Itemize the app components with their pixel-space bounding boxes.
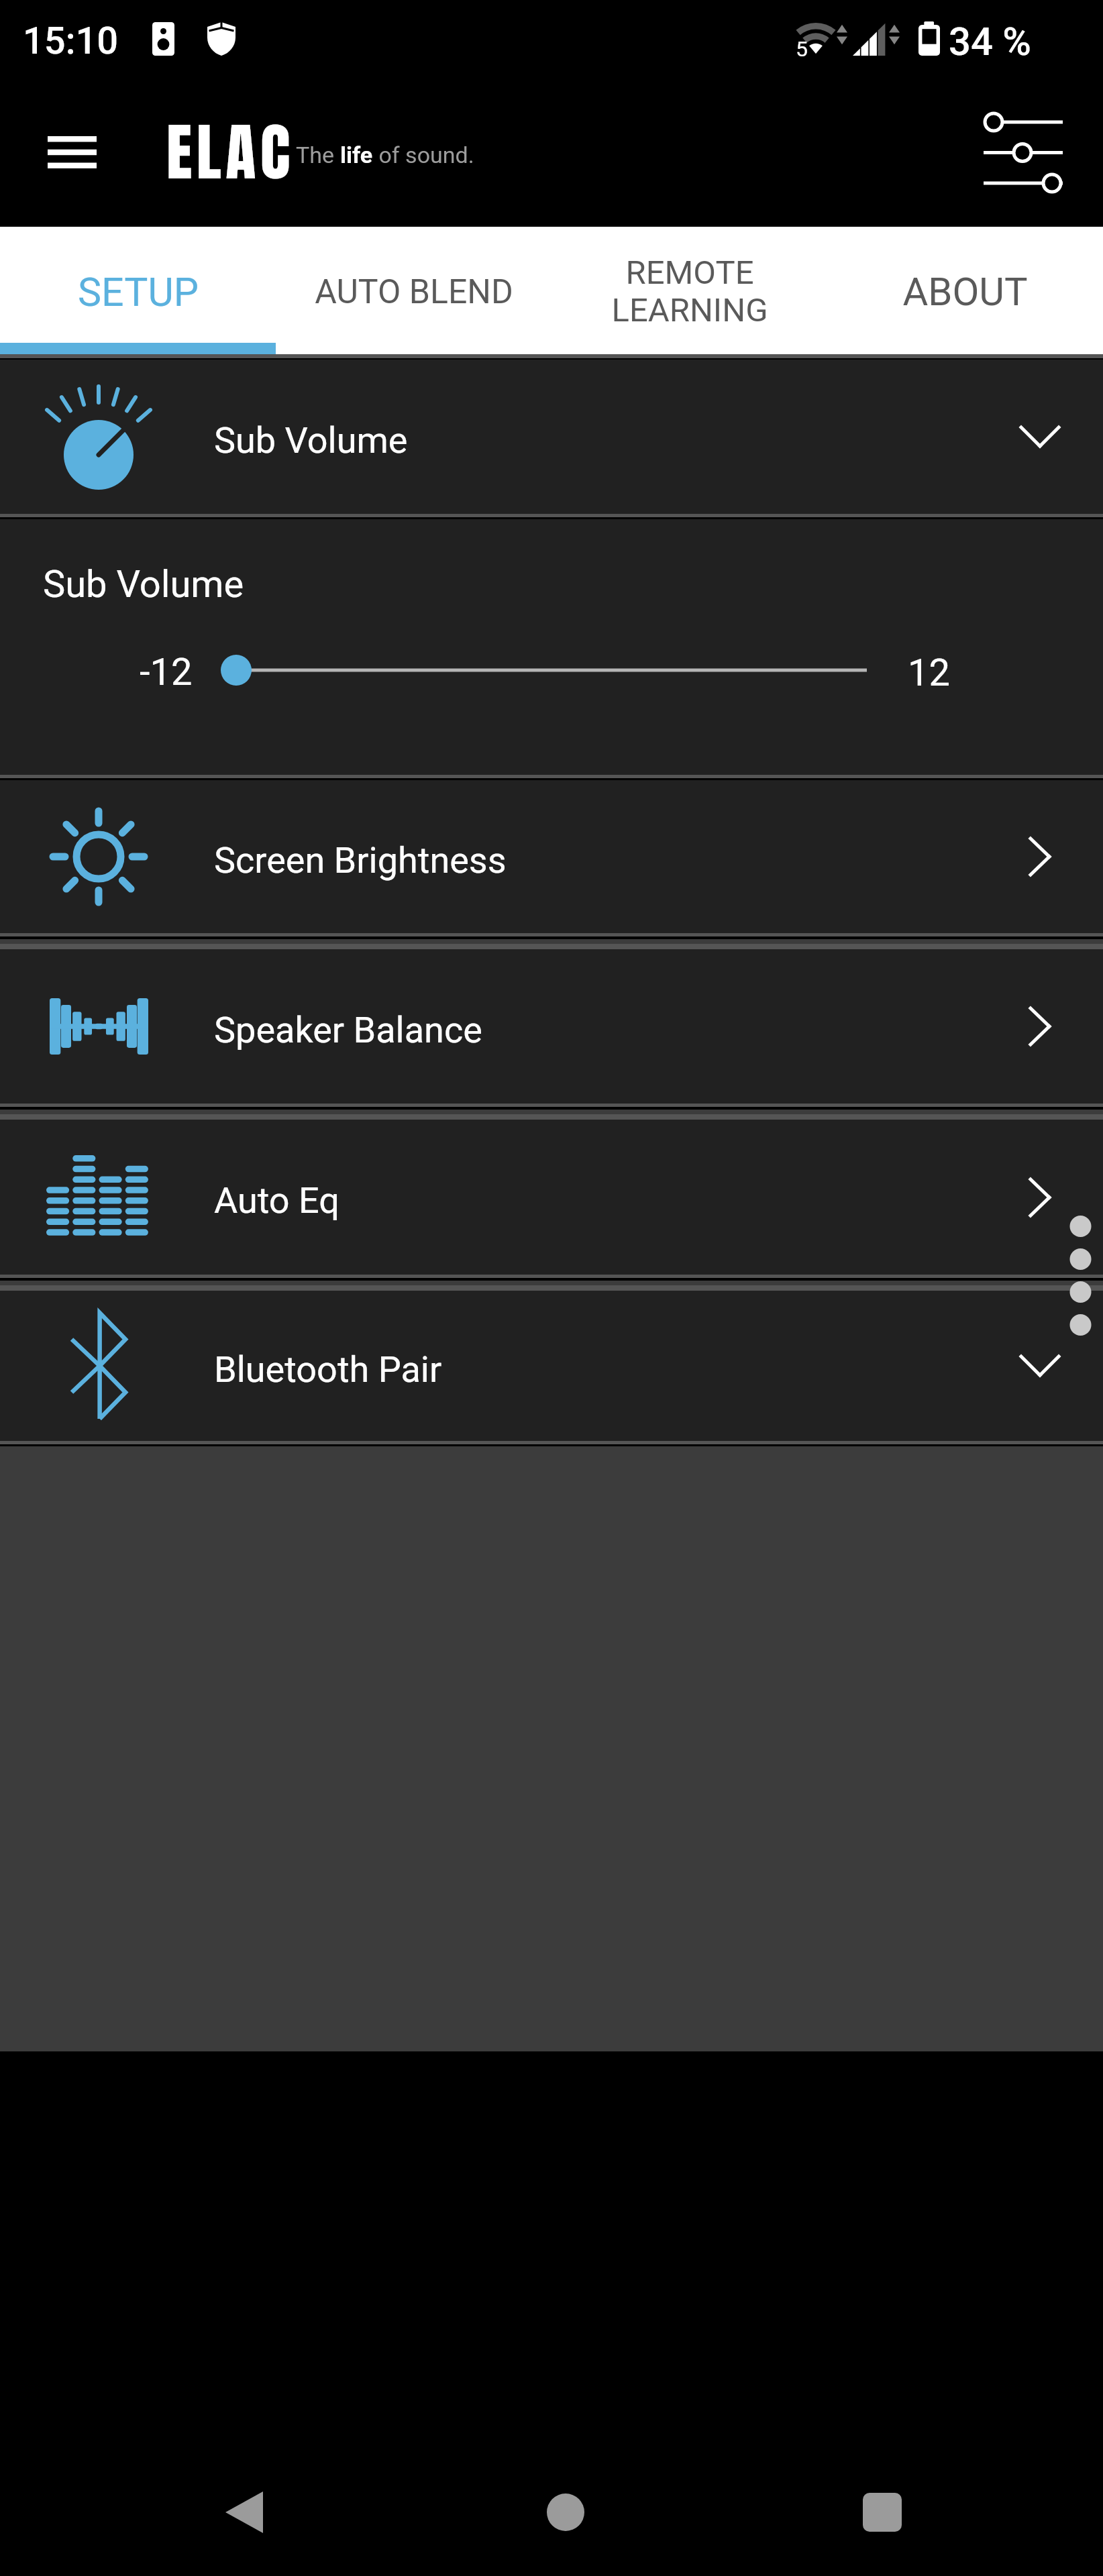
staticText: Sub Volume [43, 562, 244, 606]
staticText: The [296, 142, 340, 168]
staticText: 12 [908, 651, 950, 695]
button[interactable]: Speaker Balance [0, 949, 1103, 1104]
staticText: Auto Eq [214, 1179, 339, 1222]
staticText: ABOUT [902, 269, 1028, 315]
button[interactable]: Equalizer settings [967, 95, 1080, 210]
staticText: Speaker Balance [214, 1009, 482, 1051]
staticText: 34 % [949, 19, 1032, 64]
staticText: of sound. [373, 142, 474, 168]
button[interactable]: SETUP [0, 227, 276, 354]
staticText: Sub Volume [214, 419, 408, 462]
button[interactable]: Menu [28, 108, 116, 197]
button[interactable]: AUTO BLEND [276, 227, 551, 354]
staticText: REMOTE LEARNING [611, 254, 768, 329]
button[interactable]: Home [525, 2472, 606, 2553]
button[interactable]: ABOUT [827, 227, 1103, 354]
button[interactable]: Back [204, 2472, 284, 2553]
button[interactable]: Sub Volume [0, 360, 1103, 514]
staticText: Bluetooth Pair [214, 1348, 442, 1391]
staticText: life [340, 142, 373, 168]
button[interactable]: Recent apps [842, 2472, 923, 2553]
staticText: AUTO BLEND [315, 272, 513, 312]
staticText: 15:10 [23, 19, 119, 63]
staticText: -12 [140, 650, 193, 694]
button[interactable]: Auto Eq [0, 1120, 1103, 1275]
staticText: Screen Brightness [214, 839, 507, 881]
staticText: SETUP [78, 269, 199, 315]
staticText: 5 [796, 36, 808, 62]
staticText: ELAC [166, 105, 295, 199]
button[interactable]: Screen Brightness [0, 780, 1103, 933]
button[interactable]: REMOTE LEARNING [551, 227, 827, 354]
button[interactable]: Bluetooth Pair [0, 1291, 1103, 1441]
